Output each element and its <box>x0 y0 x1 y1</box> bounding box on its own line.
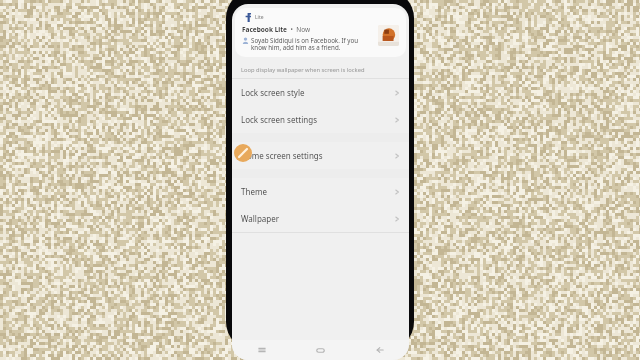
button[interactable]: Back <box>350 340 409 360</box>
staticText: • Now <box>287 25 311 34</box>
staticText: Loop display wallpaper when screen is lo… <box>241 66 365 74</box>
staticText: Lock screen style <box>241 87 394 98</box>
staticText: Home screen settings <box>241 150 394 161</box>
staticText: Theme <box>241 186 394 197</box>
staticText: Lite <box>255 14 264 21</box>
button[interactable]: Lock screen style <box>232 79 409 106</box>
button[interactable]: Theme <box>232 178 409 205</box>
button[interactable]: Loop display wallpaper when screen is lo… <box>232 61 409 78</box>
button[interactable]: Recents <box>232 340 291 360</box>
staticText: Facebook Lite <box>242 25 287 34</box>
button[interactable]: Home <box>291 340 350 360</box>
staticText: Wallpaper <box>241 213 394 224</box>
staticText: Lock screen settings <box>241 114 394 125</box>
button[interactable]: Wallpaper <box>232 205 409 232</box>
button[interactable]: Lite <box>235 8 406 57</box>
button[interactable]: Lock screen settings <box>232 106 409 133</box>
button[interactable]: Home screen settings <box>232 142 409 169</box>
staticText: Soyab Siddiqui is on Facebook. If you kn… <box>251 36 374 52</box>
